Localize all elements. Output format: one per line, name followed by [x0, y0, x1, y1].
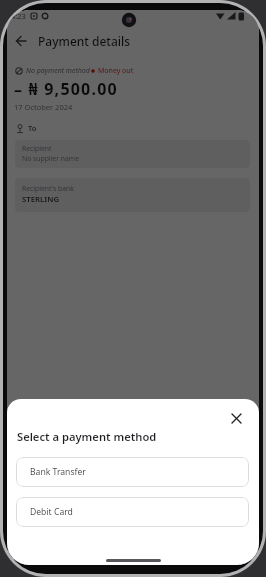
staticText: – ₦ 9,500.00 — [14, 78, 118, 100]
button[interactable]: Recipient's bank — [15, 178, 250, 212]
staticText: No supplier name — [22, 154, 79, 163]
staticText: Recipient — [22, 144, 52, 153]
staticText: No payment method — [26, 66, 90, 76]
staticText: Debit Card — [30, 506, 73, 518]
button[interactable] — [230, 412, 243, 425]
staticText: 4:23 — [11, 11, 26, 21]
staticText: Bank Transfer — [30, 466, 86, 478]
button[interactable]: Bank Transfer — [16, 457, 249, 487]
button[interactable]: Debit Card — [16, 497, 249, 527]
staticText: Money out — [98, 66, 134, 76]
staticText: To — [28, 123, 37, 133]
button[interactable]: Recipient — [15, 140, 250, 168]
staticText: Recipient's bank — [22, 184, 74, 193]
staticText: STERLING — [22, 194, 60, 205]
staticText: 17 October 2024 — [14, 102, 73, 112]
staticText: Payment details — [38, 33, 131, 49]
button[interactable] — [15, 35, 27, 47]
staticText: Select a payment method — [17, 429, 157, 444]
